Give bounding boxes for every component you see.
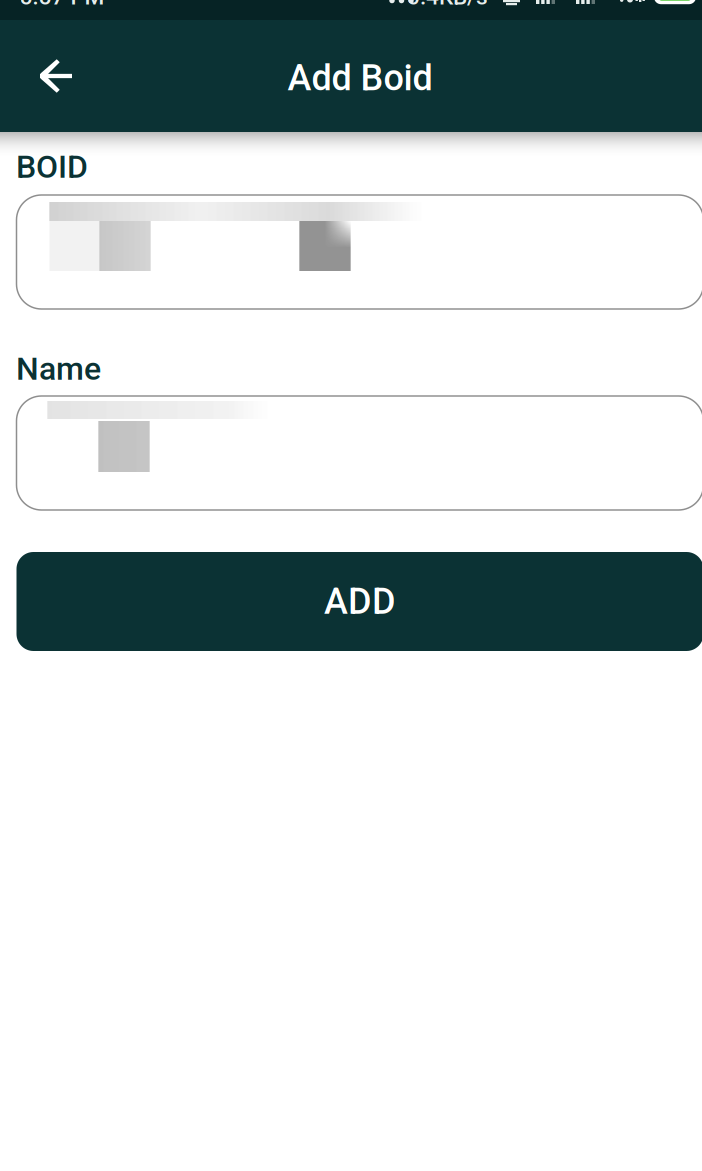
staticText: BOID [16, 148, 88, 185]
staticText: Add Boid [287, 57, 432, 99]
staticText: 0.4KB/s [407, 0, 488, 10]
staticText: Name [16, 350, 101, 387]
button[interactable]: ADD [16, 552, 702, 651]
staticText: ADD [324, 580, 396, 623]
staticText: 5:57 PM [19, 0, 104, 10]
button[interactable]: Back [20, 40, 92, 112]
